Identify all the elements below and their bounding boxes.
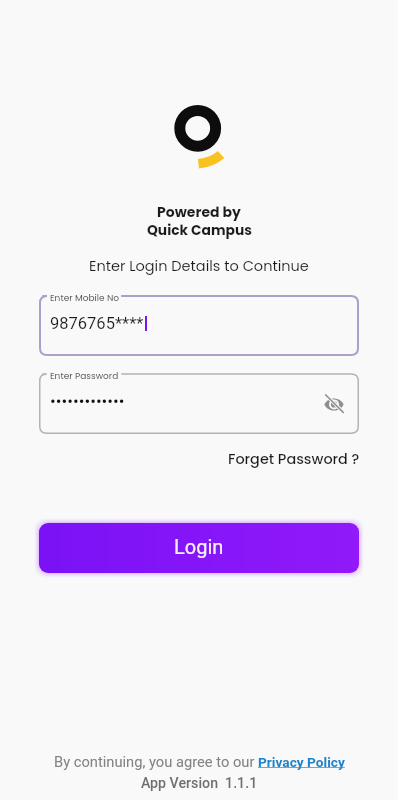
button[interactable]: Toggle password visibility xyxy=(317,386,347,416)
button[interactable]: Login xyxy=(39,523,359,573)
staticText: Powered by xyxy=(157,202,241,222)
button[interactable]: Privacy Policy xyxy=(258,754,345,770)
staticText: By continuing, you agree to our xyxy=(54,753,258,770)
staticText: ••••••••••••• xyxy=(50,391,125,411)
staticText: Enter Password xyxy=(50,370,119,383)
staticText: Login xyxy=(174,535,224,558)
staticText: App Version 1.1.1 xyxy=(141,775,258,792)
staticText: Enter Login Details to Continue xyxy=(89,256,309,276)
staticText: Enter Mobile No xyxy=(50,292,120,305)
staticText: **** xyxy=(115,314,144,333)
staticText: Forget Password ? xyxy=(228,449,360,469)
staticText: 9876765 xyxy=(50,314,115,333)
staticText: Quick Campus xyxy=(147,221,252,240)
button[interactable]: Forget Password ? xyxy=(224,444,364,474)
staticText: Privacy Policy xyxy=(258,754,345,770)
